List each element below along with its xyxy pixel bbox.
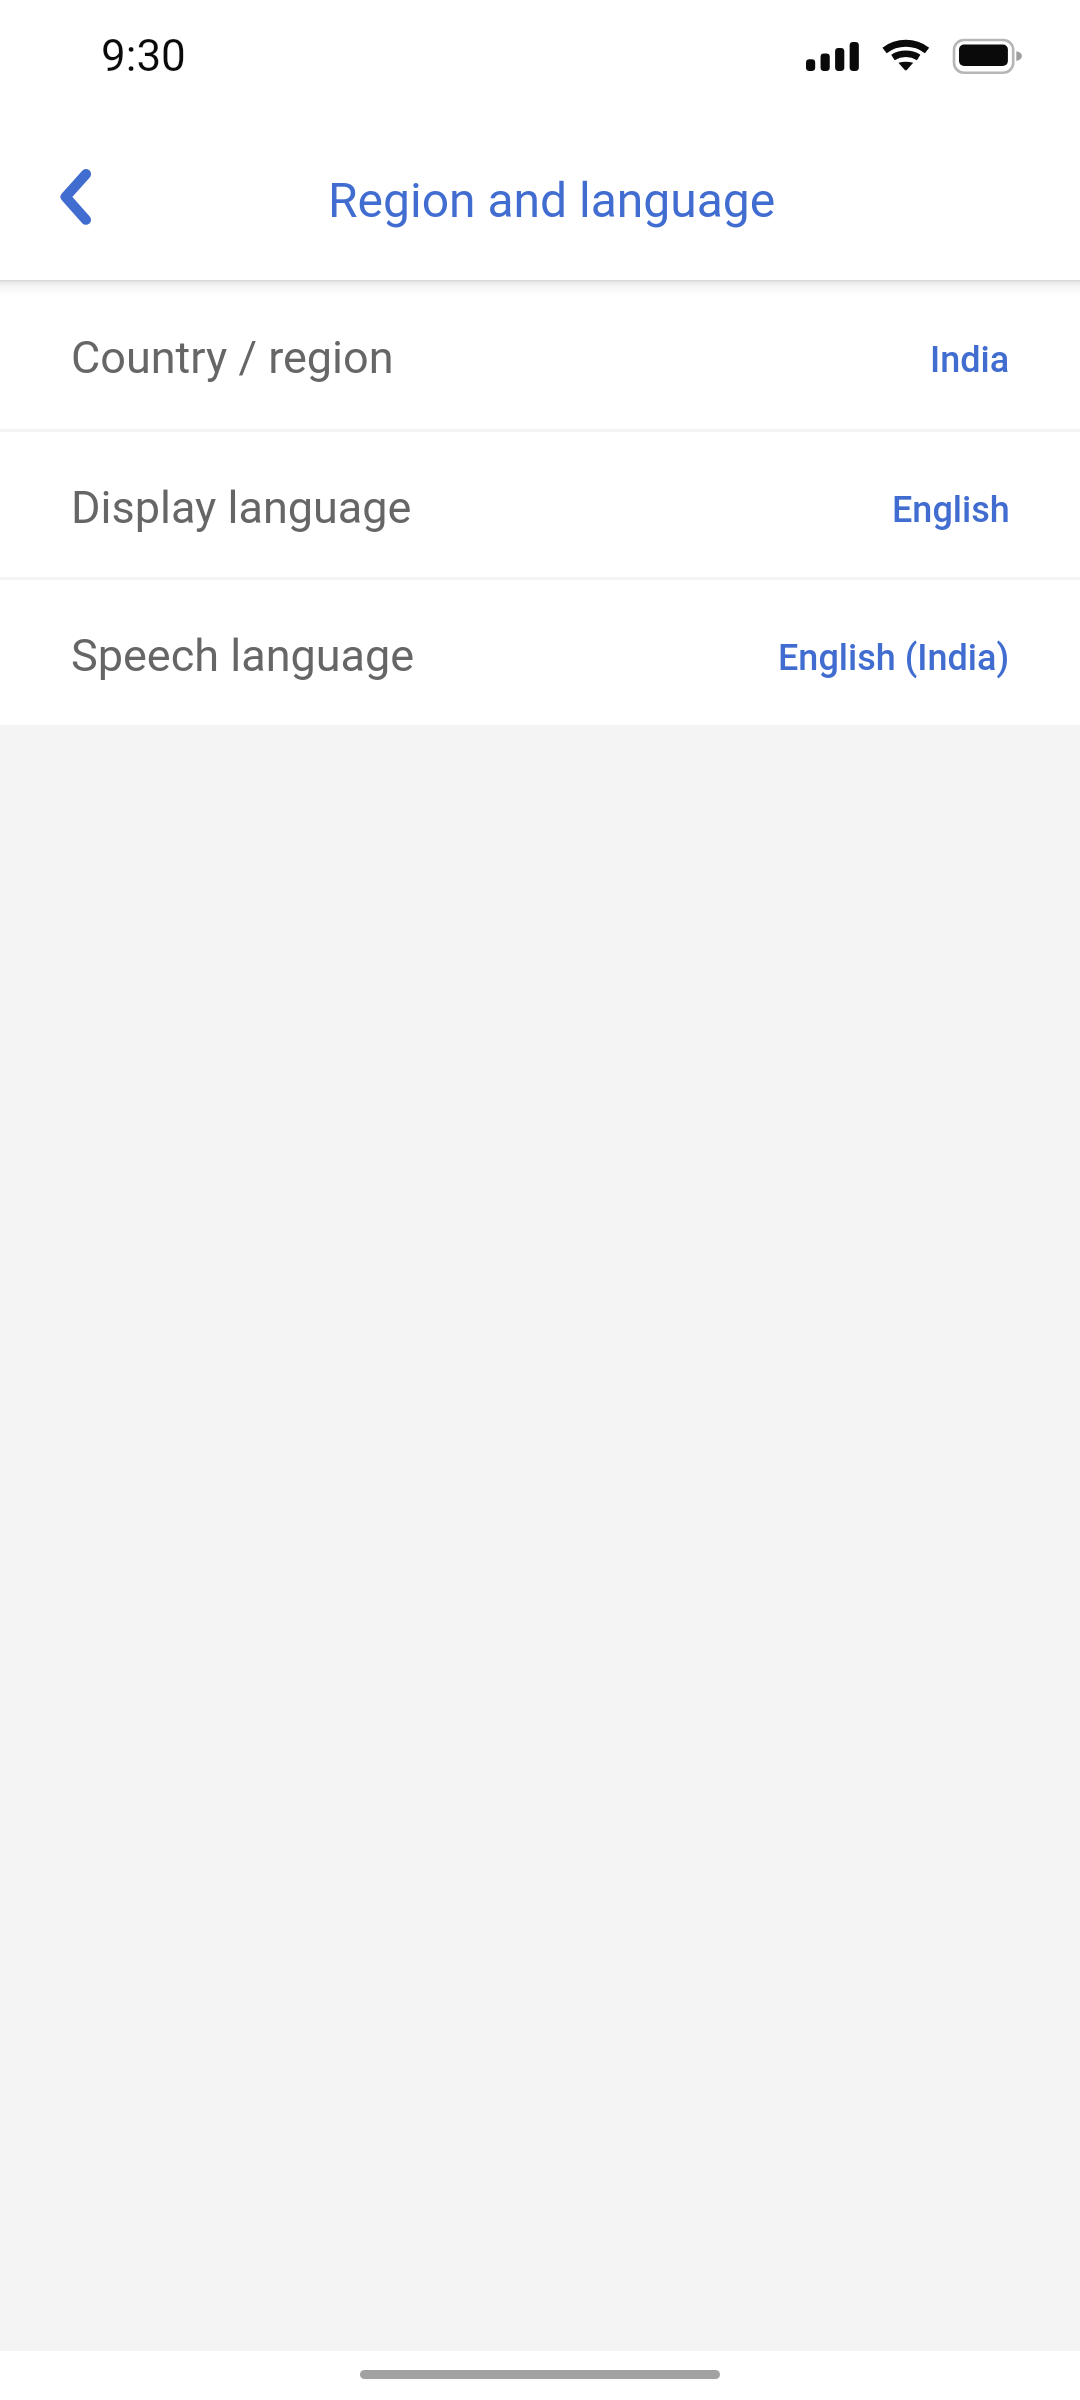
staticText: Region and language: [328, 172, 776, 228]
staticText: English: [892, 489, 1010, 531]
staticText: Country / region: [71, 331, 394, 384]
button[interactable]: Country / region: [0, 280, 1080, 429]
staticText: English (India): [778, 637, 1010, 679]
staticText: India: [930, 339, 1010, 381]
button[interactable]: Speech language: [0, 580, 1080, 725]
staticText: Display language: [71, 481, 412, 534]
button[interactable]: Display language: [0, 432, 1080, 577]
staticText: 9:30: [101, 30, 186, 82]
button[interactable]: Back: [20, 142, 132, 254]
staticText: Speech language: [71, 629, 415, 682]
